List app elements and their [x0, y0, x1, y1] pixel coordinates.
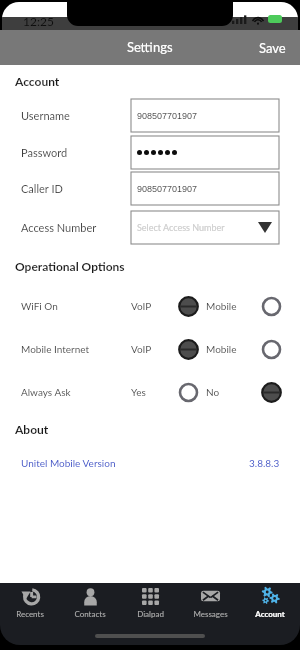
button[interactable]: Recents [0, 583, 60, 645]
button[interactable]: 908507701907 [131, 172, 279, 205]
button[interactable]: Mobile [261, 339, 282, 360]
staticText: 908507701907 [137, 184, 198, 194]
staticText: 908507701907 [137, 111, 198, 121]
staticText: Save [259, 40, 286, 56]
button[interactable]: Dialpad [120, 583, 180, 645]
button[interactable]: Save [245, 31, 300, 65]
staticText: Select Access Number [137, 222, 225, 233]
staticText: Password [21, 146, 68, 159]
staticText: VoIP [131, 300, 152, 312]
staticText: Account [15, 74, 60, 88]
staticText: Mobile Internet [21, 343, 90, 355]
button[interactable]: Yes [178, 382, 199, 403]
staticText: Username [21, 109, 70, 122]
staticText: 12:25 [23, 14, 54, 28]
button[interactable]: No [261, 382, 282, 403]
staticText: Dialpad [137, 609, 164, 619]
staticText: Settings [127, 39, 173, 55]
staticText: Always Ask [21, 386, 71, 398]
staticText: No [206, 386, 220, 398]
button[interactable]: Unitel Mobile Version [0, 454, 300, 472]
staticText: About [15, 422, 49, 436]
button[interactable]: Mobile [261, 296, 282, 317]
button[interactable]: Account [240, 583, 300, 645]
staticText: Recents [16, 609, 44, 619]
staticText: Mobile [206, 343, 237, 355]
staticText: Operational Options [15, 259, 125, 273]
staticText: VoIP [131, 343, 152, 355]
staticText: Access Number [21, 221, 97, 234]
button[interactable]: VoIP [178, 339, 199, 360]
button[interactable] [131, 136, 279, 169]
staticText: Mobile [206, 300, 237, 312]
staticText: WiFi On [21, 300, 58, 312]
staticText: Caller ID [21, 182, 63, 195]
button[interactable]: 908507701907 [131, 99, 279, 132]
button[interactable]: Contacts [60, 583, 120, 645]
staticText: 3.8.8.3 [249, 457, 280, 469]
staticText: Unitel Mobile Version [21, 457, 116, 469]
button[interactable]: Select Access Number [131, 211, 279, 244]
staticText: Contacts [74, 609, 106, 619]
staticText: Messages [193, 609, 228, 619]
button[interactable]: VoIP [178, 296, 199, 317]
staticText: Yes [131, 386, 146, 398]
button[interactable]: Messages [180, 583, 240, 645]
staticText: Account [255, 609, 285, 619]
